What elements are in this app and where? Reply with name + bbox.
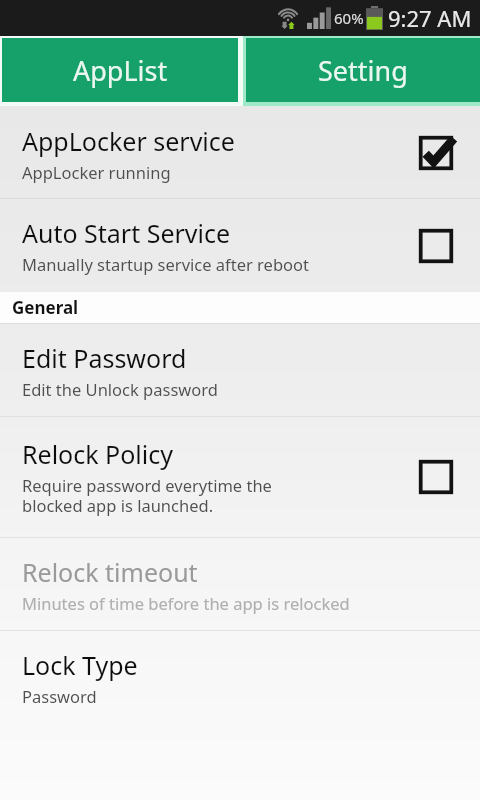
button[interactable]: Unchecked [410,451,462,503]
button[interactable]: AppList [2,38,238,102]
button[interactable]: Auto Start Service [0,199,480,292]
button[interactable]: Setting [246,38,480,102]
staticText: AppLocker service [22,124,235,158]
button[interactable]: Relock Policy [0,417,480,537]
staticText: Edit the Unlock password [22,378,218,400]
staticText: Require password everytime the blocked a… [22,474,272,517]
staticText: AppList [73,52,168,89]
button[interactable]: Relock timeout [0,538,480,630]
button[interactable]: AppLocker service [0,108,480,198]
staticText: AppLocker running [22,161,171,183]
staticText: Edit Password [22,341,187,375]
staticText: Setting [318,52,408,89]
staticText: Minutes of time before the app is relock… [22,592,350,614]
staticText: 60% [334,8,364,28]
button[interactable]: Unchecked [410,220,462,272]
staticText: General [12,296,79,319]
staticText: 9:27 AM [388,3,472,33]
staticText: Password [22,685,97,707]
button[interactable]: Checked [410,127,462,179]
staticText: Lock Type [22,648,138,682]
button[interactable]: Edit Password [0,324,480,416]
button[interactable]: Lock Type [0,631,480,723]
staticText: Relock Policy [22,437,173,471]
staticText: Relock timeout [22,555,198,589]
staticText: Manually startup service after reboot [22,253,309,275]
staticText: Auto Start Service [22,216,231,250]
